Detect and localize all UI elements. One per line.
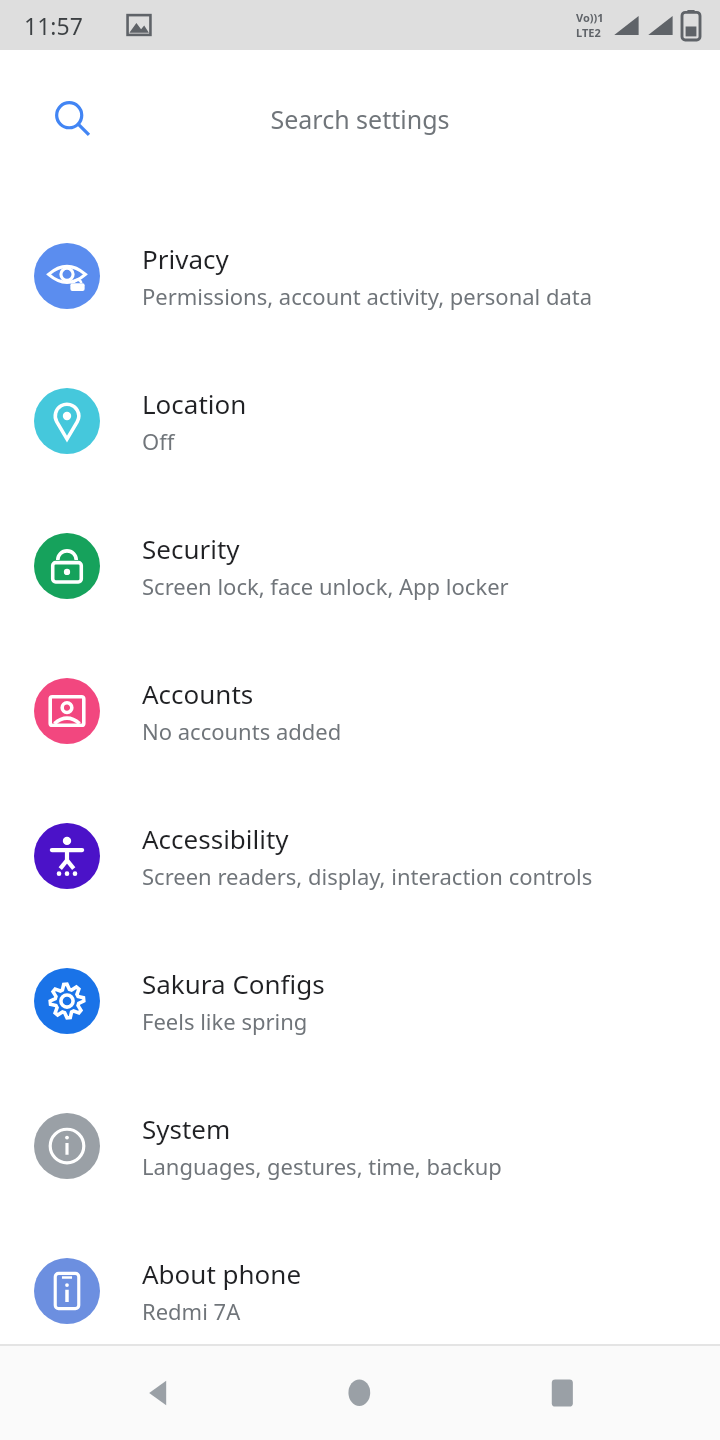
staticText: Accounts: [142, 676, 254, 711]
staticText: Screen readers, display, interaction con…: [142, 861, 593, 891]
button[interactable]: Location: [0, 348, 720, 493]
button[interactable]: About phone: [0, 1218, 720, 1363]
button[interactable]: Recent apps: [518, 1348, 608, 1438]
staticText: Vo))1: [576, 10, 604, 25]
staticText: Sakura Configs: [142, 966, 325, 1001]
button[interactable]: System: [0, 1073, 720, 1218]
button[interactable]: Privacy: [0, 203, 720, 348]
staticText: LTE2: [576, 25, 601, 40]
staticText: Feels like spring: [142, 1006, 308, 1036]
button[interactable]: Search settings: [14, 70, 706, 167]
staticText: System: [142, 1111, 231, 1146]
button[interactable]: Accessibility: [0, 783, 720, 928]
button[interactable]: Sakura Configs: [0, 928, 720, 1073]
staticText: Permissions, account activity, personal …: [142, 281, 593, 311]
staticText: No accounts added: [142, 716, 342, 746]
button[interactable]: Security: [0, 493, 720, 638]
staticText: Accessibility: [142, 821, 289, 856]
button[interactable]: Home: [315, 1348, 405, 1438]
staticText: Search settings: [270, 102, 450, 136]
staticText: Off: [142, 426, 175, 456]
button[interactable]: Back: [113, 1348, 203, 1438]
staticText: Security: [142, 531, 240, 566]
staticText: About phone: [142, 1256, 302, 1291]
staticText: Screen lock, face unlock, App locker: [142, 571, 509, 601]
staticText: 11:57: [24, 10, 83, 41]
staticText: Redmi 7A: [142, 1296, 241, 1326]
staticText: Privacy: [142, 241, 229, 276]
staticText: Location: [142, 386, 247, 421]
button[interactable]: Accounts: [0, 638, 720, 783]
staticText: Languages, gestures, time, backup: [142, 1151, 502, 1181]
